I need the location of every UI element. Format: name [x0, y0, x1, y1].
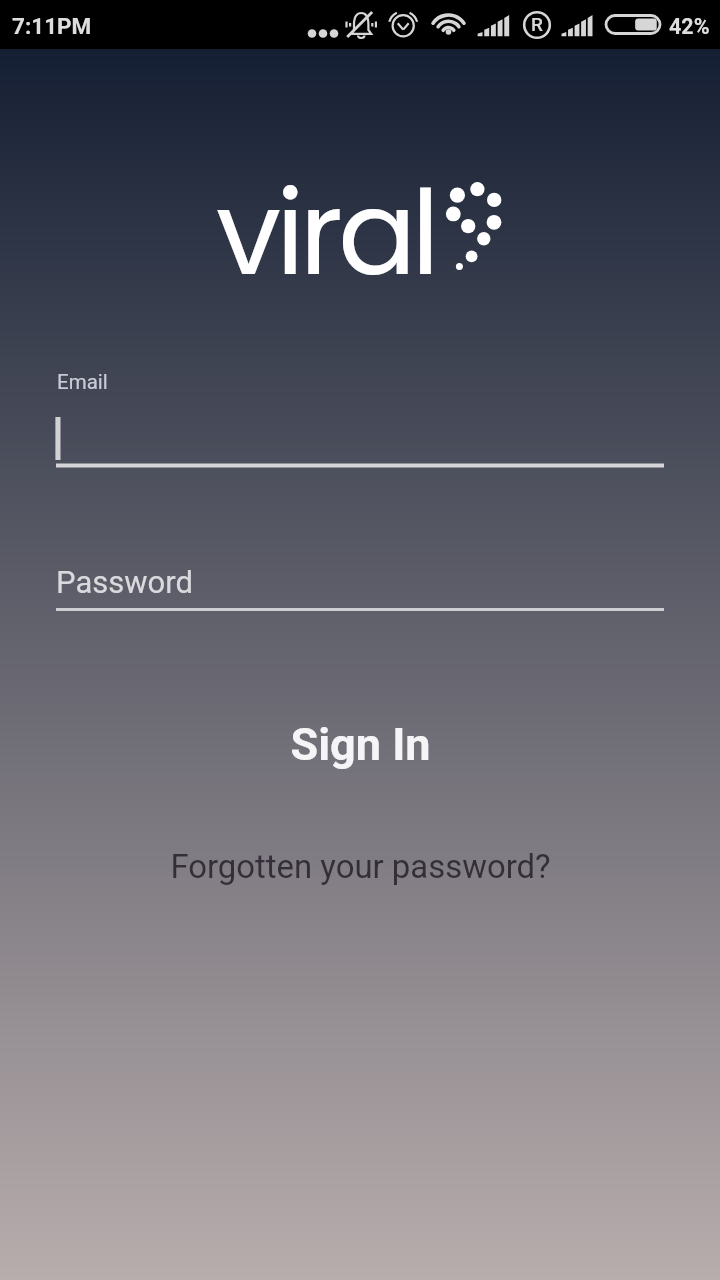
staticText: R: [531, 13, 543, 35]
staticText: 7:11PM: [12, 13, 92, 39]
button[interactable]: [56, 410, 664, 468]
button[interactable]: Sign In: [0, 707, 720, 781]
staticText: viral: [216, 152, 435, 314]
staticText: 42%: [669, 14, 710, 39]
staticText: Sign In: [290, 718, 431, 771]
button[interactable]: Forgotten your password?: [0, 839, 720, 893]
staticText: Forgotten your password?: [170, 847, 551, 886]
staticText: Email: [57, 370, 108, 394]
staticText: Password: [56, 564, 193, 600]
button[interactable]: Password: [56, 556, 664, 610]
